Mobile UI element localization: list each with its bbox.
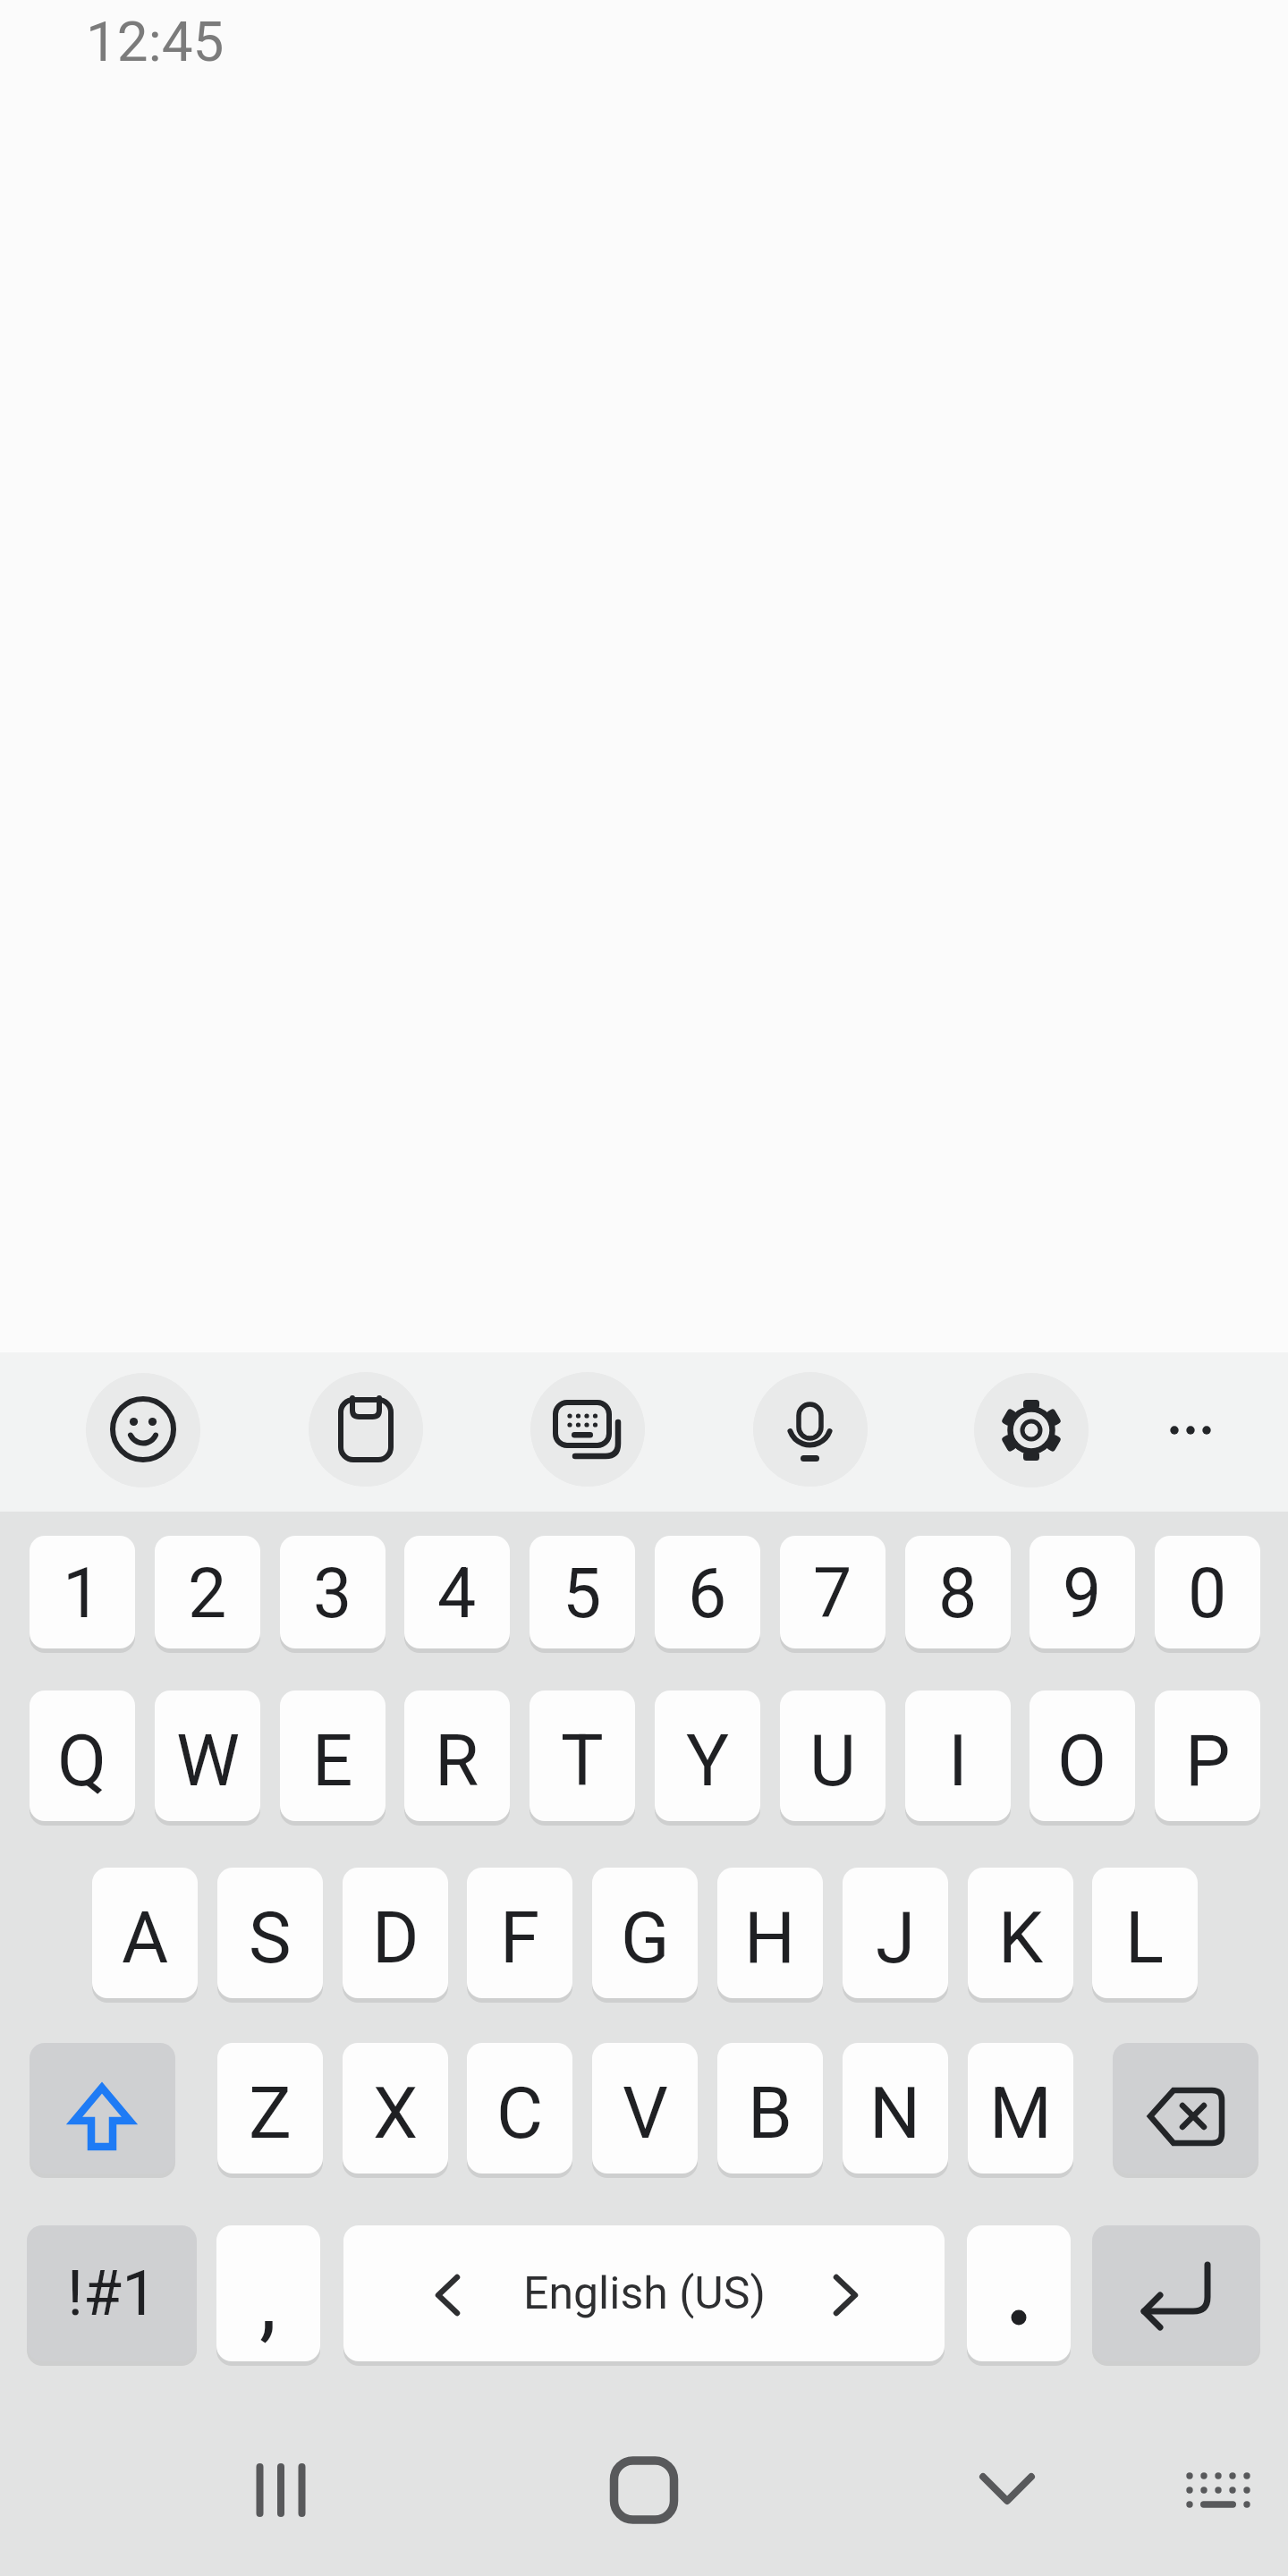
staticText: I	[948, 1719, 968, 1803]
staticText: U	[809, 1719, 856, 1803]
button[interactable]: B	[717, 2043, 823, 2173]
button[interactable]: M	[968, 2043, 1073, 2173]
staticText: 12:45	[86, 9, 225, 74]
staticText: H	[744, 1896, 796, 1980]
staticText: S	[249, 1896, 292, 1980]
button[interactable]: G	[592, 1868, 698, 1998]
button[interactable]	[1113, 2043, 1258, 2173]
button[interactable]: !#1	[27, 2225, 197, 2361]
button[interactable]: J	[843, 1868, 948, 1998]
button[interactable]: 3	[280, 1536, 386, 1648]
staticText: C	[496, 2072, 544, 2156]
staticText: 4	[437, 1554, 477, 1634]
button[interactable]: H	[717, 1868, 823, 1998]
button[interactable]: 5	[530, 1536, 635, 1648]
staticText: English (US)	[523, 2267, 766, 2320]
button[interactable]: 2	[155, 1536, 260, 1648]
staticText: B	[748, 2072, 792, 2156]
button[interactable]: N	[843, 2043, 948, 2173]
button[interactable]: A	[92, 1868, 198, 1998]
staticText: 7	[813, 1554, 852, 1634]
staticText: 3	[313, 1554, 352, 1634]
button[interactable]: 0	[1155, 1536, 1260, 1648]
staticText: O	[1057, 1719, 1107, 1803]
button[interactable]: English (US)	[343, 2225, 945, 2361]
staticText: Z	[249, 2072, 292, 2156]
button[interactable]	[1142, 1382, 1239, 1479]
staticText: !#1	[67, 2257, 157, 2330]
staticText: L	[1125, 1896, 1165, 1980]
staticText: 2	[188, 1554, 227, 1634]
button[interactable]: 8	[905, 1536, 1011, 1648]
button[interactable]: ,	[216, 2225, 320, 2361]
staticText: ,	[259, 2250, 277, 2352]
button[interactable]	[227, 2436, 335, 2544]
staticText: T	[561, 1719, 604, 1803]
button[interactable]: 4	[404, 1536, 510, 1648]
staticText: 9	[1063, 1554, 1102, 1634]
staticText: 5	[563, 1554, 602, 1634]
button[interactable]	[1092, 2225, 1260, 2361]
button[interactable]	[30, 2043, 175, 2173]
button[interactable]: O	[1030, 1690, 1135, 1821]
button[interactable]	[967, 2225, 1071, 2361]
button[interactable]: Z	[217, 2043, 323, 2173]
button[interactable]: 7	[780, 1536, 885, 1648]
button[interactable]: U	[780, 1690, 885, 1821]
button[interactable]: T	[530, 1690, 635, 1821]
staticText: F	[500, 1896, 540, 1980]
button[interactable]: F	[467, 1868, 572, 1998]
button[interactable]: D	[343, 1868, 448, 1998]
button[interactable]: Q	[30, 1690, 135, 1821]
staticText: W	[176, 1719, 240, 1803]
button[interactable]: K	[968, 1868, 1073, 1998]
button[interactable]: 1	[30, 1536, 135, 1648]
button[interactable]: I	[905, 1690, 1011, 1821]
staticText: 0	[1188, 1554, 1227, 1634]
staticText: 6	[688, 1554, 727, 1634]
staticText: J	[876, 1896, 916, 1980]
staticText: N	[869, 2072, 921, 2156]
button[interactable]: R	[404, 1690, 510, 1821]
button[interactable]: V	[592, 2043, 698, 2173]
staticText: 1	[63, 1554, 102, 1634]
button[interactable]: Y	[655, 1690, 760, 1821]
button[interactable]	[1165, 2436, 1272, 2544]
button[interactable]: X	[343, 2043, 448, 2173]
button[interactable]	[530, 1372, 645, 1487]
button[interactable]	[590, 2436, 698, 2544]
staticText: R	[435, 1719, 479, 1803]
button[interactable]: 9	[1030, 1536, 1135, 1648]
button[interactable]	[974, 1373, 1089, 1487]
staticText: G	[621, 1896, 670, 1980]
staticText: E	[312, 1719, 353, 1803]
button[interactable]: W	[155, 1690, 260, 1821]
staticText: D	[372, 1896, 419, 1980]
button[interactable]: L	[1092, 1868, 1198, 1998]
staticText: V	[623, 2072, 668, 2156]
button[interactable]: C	[467, 2043, 572, 2173]
staticText: X	[373, 2072, 419, 2156]
button[interactable]	[953, 2436, 1061, 2544]
staticText: Q	[57, 1719, 107, 1803]
staticText: P	[1185, 1719, 1231, 1803]
button[interactable]: E	[280, 1690, 386, 1821]
button[interactable]	[86, 1373, 200, 1487]
button[interactable]: 6	[655, 1536, 760, 1648]
staticText: Y	[686, 1719, 730, 1803]
button[interactable]: P	[1155, 1690, 1260, 1821]
staticText: K	[998, 1896, 1044, 1980]
staticText: 8	[938, 1554, 978, 1634]
button[interactable]: S	[217, 1868, 323, 1998]
staticText: M	[989, 2072, 1052, 2156]
button[interactable]	[309, 1372, 423, 1487]
button[interactable]	[753, 1372, 868, 1487]
staticText: A	[122, 1896, 169, 1980]
